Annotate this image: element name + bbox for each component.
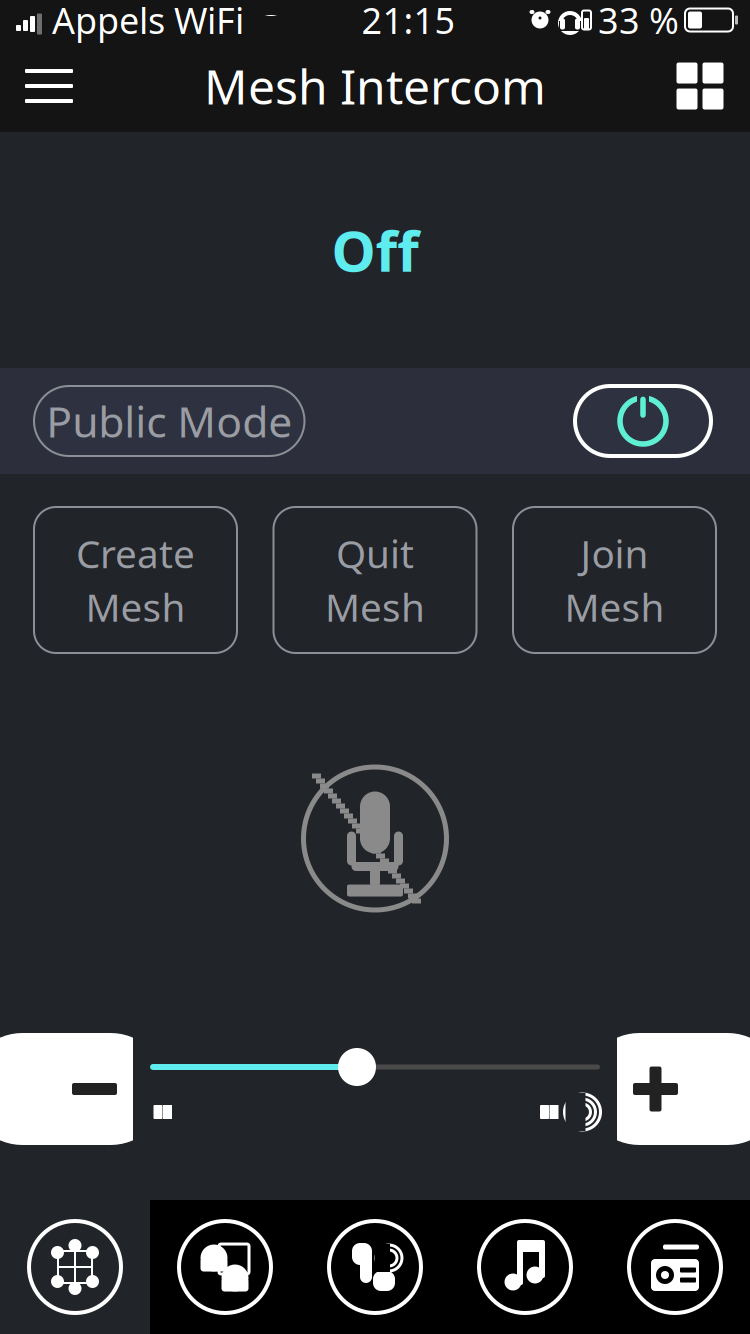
staticText: Mesh Intercom [204, 54, 546, 118]
button[interactable]: Radio [600, 1200, 750, 1334]
button[interactable]: Music [450, 1200, 600, 1334]
staticText: Join [580, 528, 648, 579]
button[interactable]: Join [513, 507, 716, 653]
staticText: Mesh [85, 581, 185, 632]
button[interactable]: Volume up [617, 1033, 750, 1145]
button[interactable]: Microphone muted [300, 763, 450, 913]
staticText: 33 % [598, 0, 679, 44]
button[interactable]: Phone [300, 1200, 450, 1334]
staticText: Appels WiFi [52, 0, 244, 44]
button[interactable]: Mesh Intercom [0, 1200, 150, 1334]
button[interactable]: Volume down [0, 1033, 133, 1145]
button[interactable]: Create [34, 507, 237, 653]
staticText: Quit [336, 528, 414, 579]
button[interactable]: Intercom [150, 1200, 300, 1334]
button[interactable]: Power [575, 386, 711, 456]
button[interactable]: Public Mode [34, 386, 304, 456]
staticText: 21:15 [361, 0, 455, 44]
button[interactable]: Grid view [664, 53, 736, 119]
staticText: Public Mode [46, 393, 292, 449]
staticText: Off [331, 213, 418, 287]
staticText: Mesh [564, 581, 664, 632]
button[interactable]: Menu [14, 53, 84, 119]
staticText: Create [76, 528, 195, 579]
button[interactable]: Quit [273, 507, 476, 653]
staticText: Mesh [325, 581, 425, 632]
